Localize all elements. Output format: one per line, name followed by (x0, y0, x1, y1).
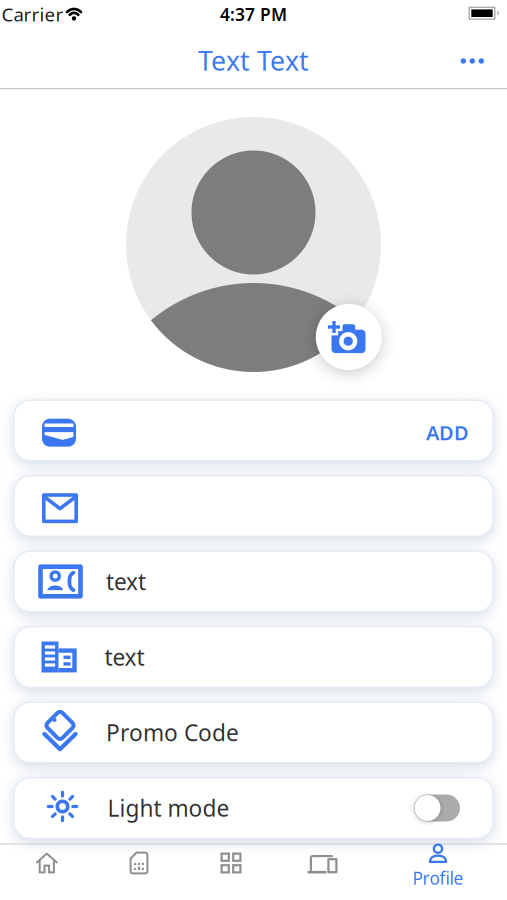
staticText: Profile (412, 866, 463, 889)
button[interactable]: Light mode (414, 794, 460, 821)
button[interactable]: Light mode (14, 778, 493, 838)
button[interactable]: Company details (14, 627, 493, 687)
staticText: text (106, 566, 146, 596)
staticText: Light mode (107, 793, 229, 823)
staticText: 4:37 PM (220, 3, 287, 26)
button[interactable]: Change photo (316, 304, 382, 370)
button[interactable]: Home (7, 836, 87, 890)
button[interactable]: Add payment card (14, 400, 493, 461)
button[interactable]: Promo Code (14, 702, 493, 763)
staticText: Promo Code (106, 717, 239, 747)
button[interactable]: More (450, 41, 494, 81)
staticText: text (104, 642, 144, 672)
staticText: ADD (426, 419, 469, 446)
button[interactable]: SIM (99, 836, 179, 890)
staticText: Text Text (198, 43, 309, 78)
staticText: Carrier (1, 2, 63, 27)
button[interactable]: Profile (393, 839, 483, 893)
button[interactable]: Devices (282, 836, 362, 890)
button[interactable]: Contact details (14, 551, 493, 612)
button[interactable]: Services (191, 836, 271, 890)
button[interactable]: Email (14, 476, 493, 536)
